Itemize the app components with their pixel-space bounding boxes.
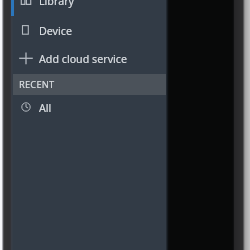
staticText: RECENT <box>19 78 55 91</box>
button[interactable]: RECENT <box>10 74 168 95</box>
button[interactable]: Add cloud service <box>10 44 168 72</box>
staticText: Device <box>39 24 72 39</box>
button[interactable]: All <box>10 93 168 121</box>
staticText: Library <box>39 0 74 9</box>
staticText: All <box>39 101 52 116</box>
staticText: Add cloud service <box>39 52 127 67</box>
button[interactable]: Library <box>10 0 168 16</box>
button[interactable]: Device <box>10 16 168 44</box>
